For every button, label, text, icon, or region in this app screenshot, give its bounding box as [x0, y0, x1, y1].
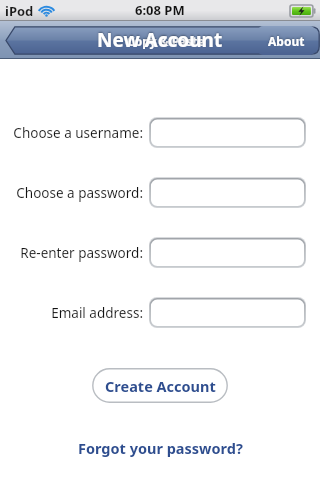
staticText: Choose a username: — [13, 124, 143, 142]
staticText: Create Account — [105, 376, 216, 396]
staticText: Copy & Paste — [127, 33, 205, 49]
staticText: About — [268, 33, 305, 49]
button[interactable]: Forgot your password? — [70, 435, 251, 461]
staticText: 6:08 PM — [135, 1, 185, 19]
staticText: Forgot your password? — [78, 438, 243, 458]
staticText: iPod — [5, 2, 34, 20]
staticText: Email address: — [51, 304, 143, 322]
button[interactable]: About — [258, 26, 315, 55]
button[interactable]: Copy & Paste — [5, 26, 320, 55]
staticText: Choose a password: — [16, 184, 143, 202]
staticText: Re-enter password: — [20, 244, 143, 262]
button[interactable] — [149, 117, 306, 148]
staticText: New Account — [97, 27, 223, 53]
button[interactable]: Create Account — [92, 368, 228, 403]
button[interactable] — [149, 177, 306, 208]
button[interactable] — [149, 297, 306, 328]
button[interactable] — [149, 237, 306, 268]
